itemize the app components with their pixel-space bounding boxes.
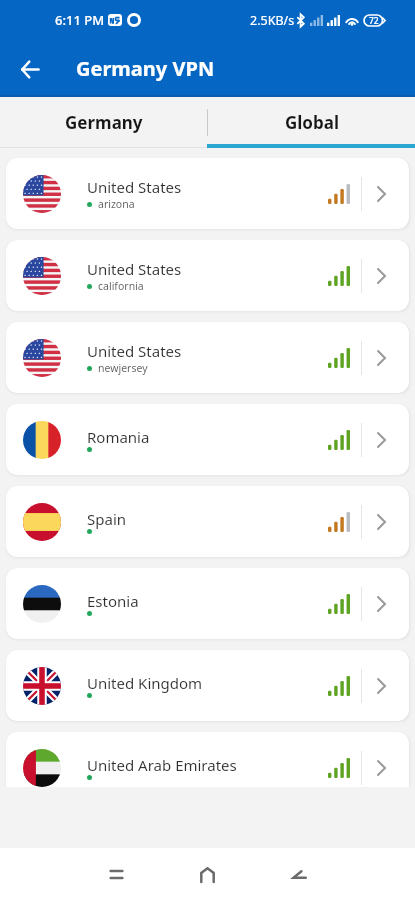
- button[interactable]: Back: [8, 47, 52, 91]
- button[interactable]: Estonia: [6, 568, 409, 639]
- staticText: Germany: [65, 111, 143, 134]
- staticText: Global: [285, 111, 339, 134]
- staticText: Germany VPN: [76, 55, 215, 82]
- staticText: 72: [369, 15, 379, 27]
- staticText: Estonia: [87, 591, 139, 611]
- staticText: United Arab Emirates: [87, 755, 237, 775]
- button[interactable]: Global: [208, 97, 415, 148]
- button[interactable]: United Kingdom: [6, 650, 409, 721]
- staticText: United States: [87, 341, 182, 361]
- button[interactable]: Recent apps: [84, 848, 148, 900]
- staticText: arizona: [98, 197, 135, 211]
- button[interactable]: Germany: [0, 97, 207, 148]
- staticText: california: [98, 279, 144, 293]
- button[interactable]: Back: [267, 848, 331, 900]
- button[interactable]: United Arab Emirates: [6, 732, 409, 787]
- staticText: United Kingdom: [87, 673, 203, 693]
- staticText: United States: [87, 177, 182, 197]
- button[interactable]: United States: [6, 240, 409, 311]
- button[interactable]: Home: [175, 848, 239, 900]
- staticText: newjersey: [98, 361, 148, 375]
- button[interactable]: United States: [6, 322, 409, 393]
- staticText: Spain: [87, 509, 127, 529]
- staticText: 2.5KB/s: [250, 12, 295, 29]
- button[interactable]: Romania: [6, 404, 409, 475]
- staticText: 6:11 PM: [55, 11, 105, 29]
- staticText: United States: [87, 259, 182, 279]
- button[interactable]: Spain: [6, 486, 409, 557]
- staticText: Romania: [87, 427, 150, 447]
- button[interactable]: United States: [6, 158, 409, 229]
